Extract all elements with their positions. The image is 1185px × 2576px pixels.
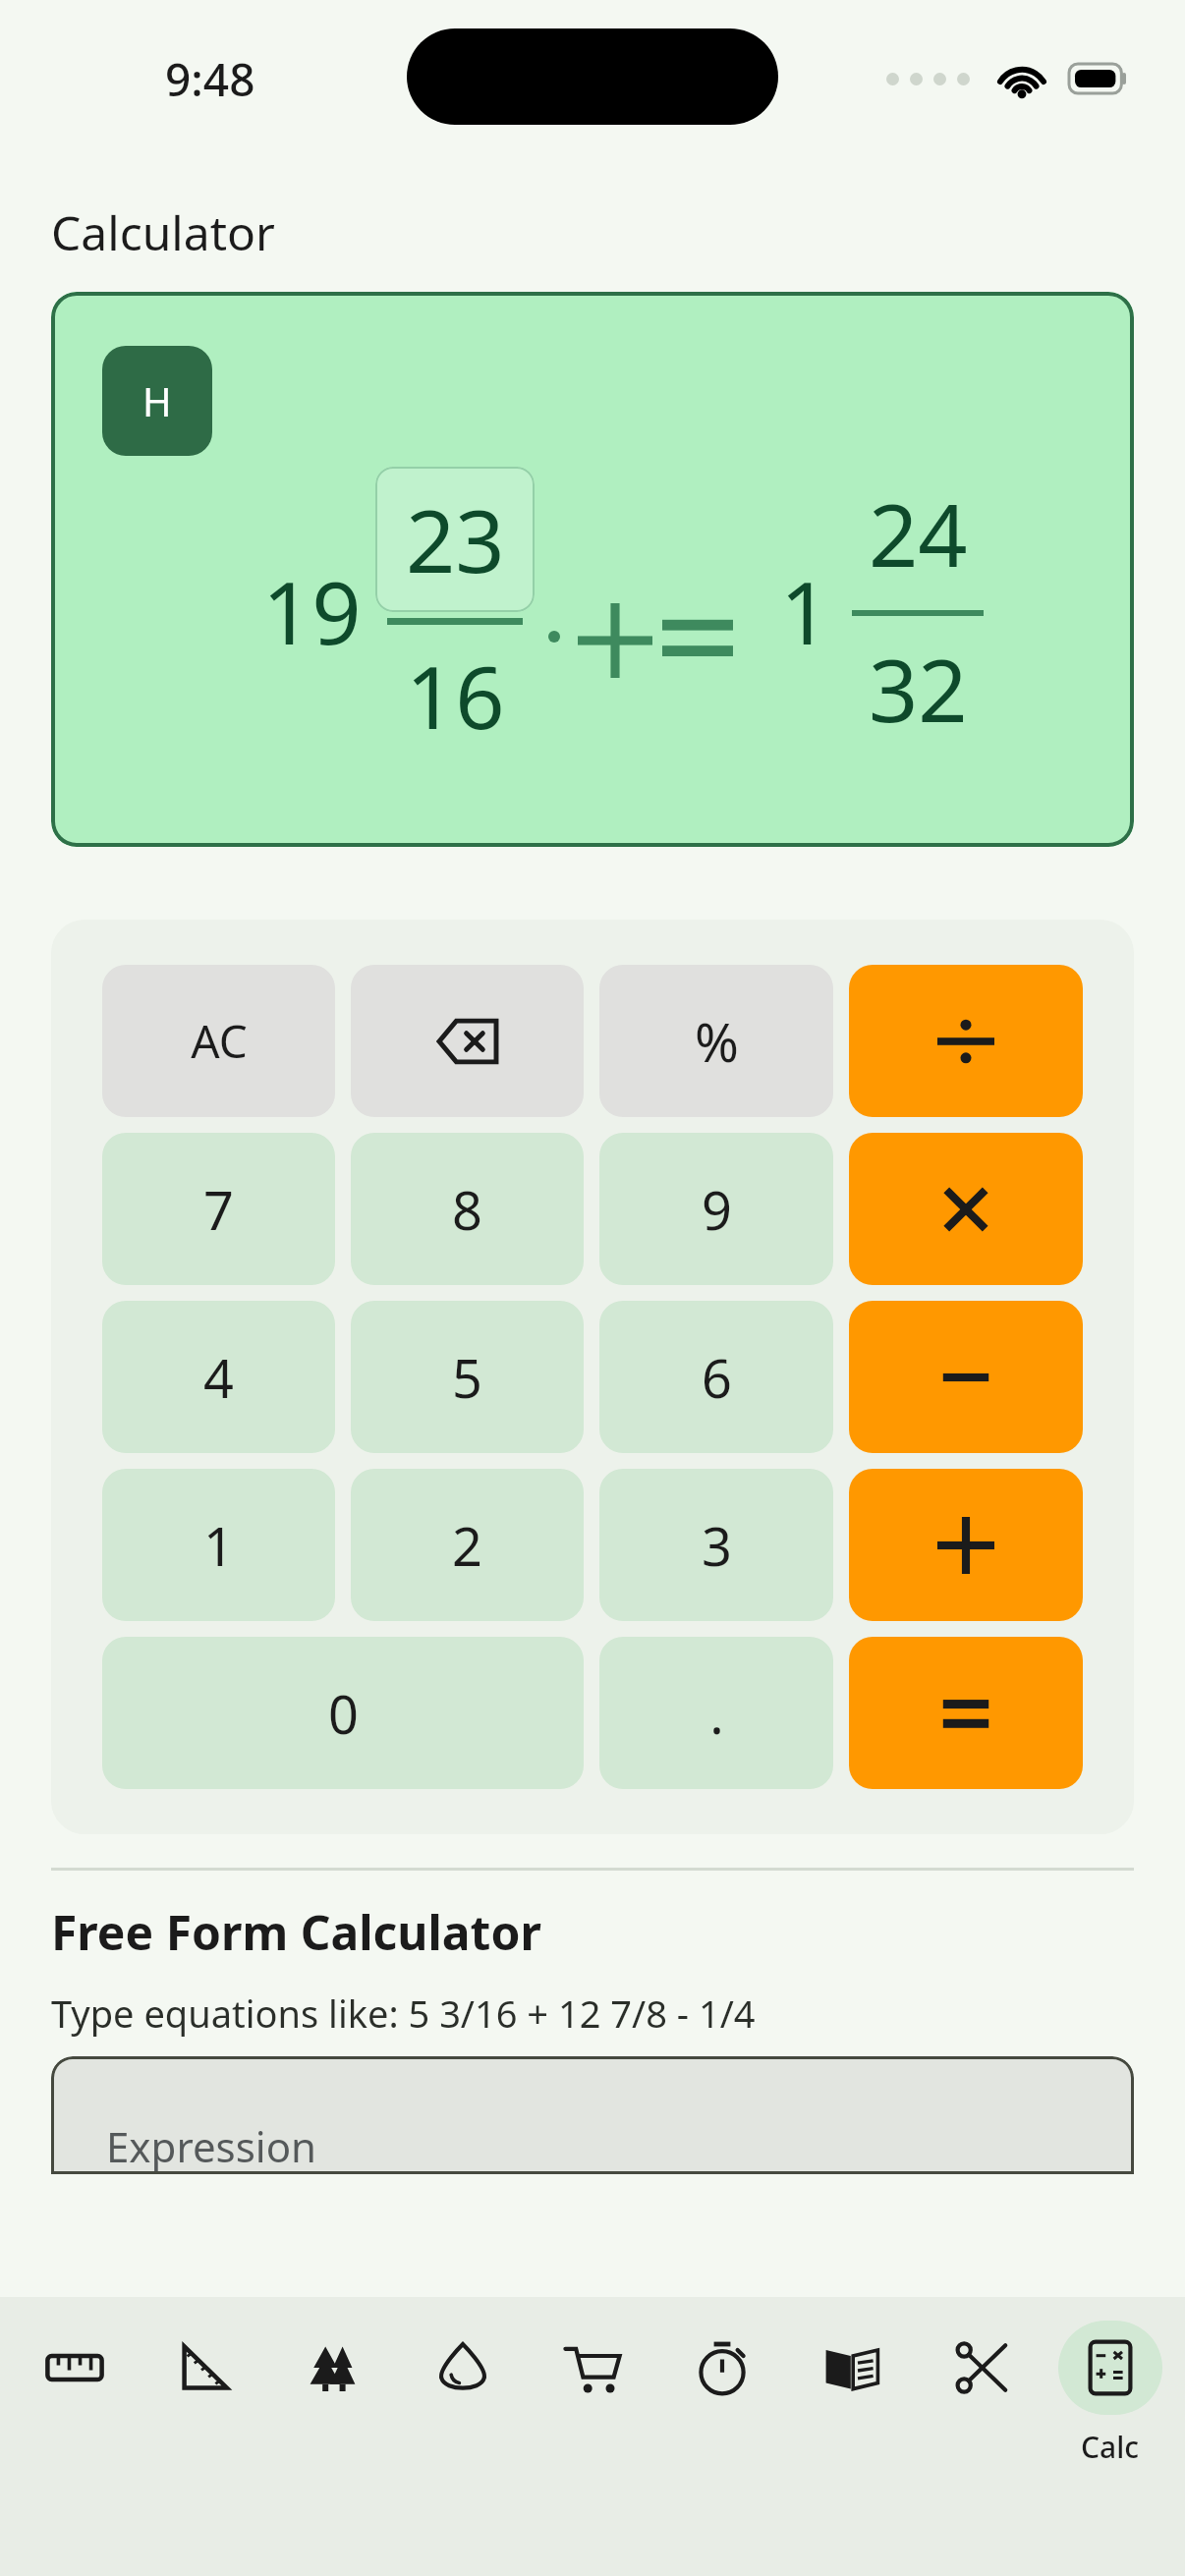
button[interactable]: 32 [869,630,968,748]
staticText: 6 [702,1341,732,1414]
button[interactable]: Cut List [926,2321,1036,2415]
button[interactable]: 6 [599,1301,833,1453]
button[interactable]: Minus [849,1301,1083,1453]
button[interactable]: Materials [537,2321,648,2415]
staticText: 3 [702,1509,732,1582]
button[interactable]: Guide [797,2321,907,2415]
staticText: % [695,1005,739,1078]
staticText: 9:48 [165,48,255,110]
button[interactable]: Divide [849,965,1083,1117]
button[interactable]: H [102,346,212,456]
button[interactable]: 3 [599,1469,833,1621]
staticText: Calc [1081,2427,1140,2467]
staticText: 8 [452,1173,482,1246]
button[interactable]: Timer [667,2321,777,2415]
button[interactable]: Equals [849,1637,1083,1789]
staticText: H [142,374,172,427]
staticText: 16 [406,637,505,755]
button[interactable]: 1 [102,1469,335,1621]
staticText: . [709,1677,724,1750]
button[interactable]: Angle [149,2321,259,2415]
button[interactable]: Concrete [408,2321,518,2415]
staticText: Calculator [51,200,275,264]
button[interactable]: . [599,1637,833,1789]
button[interactable]: % [599,965,833,1117]
button[interactable]: 4 [102,1301,335,1453]
button[interactable]: 0 [102,1637,584,1789]
staticText: 19 [262,552,362,670]
staticText: 1 [780,552,830,670]
button[interactable]: 8 [351,1133,584,1285]
button[interactable]: H [51,292,1134,847]
button[interactable]: Calc [1055,2321,1165,2467]
button[interactable]: 7 [102,1133,335,1285]
staticText: 9 [702,1173,732,1246]
staticText: 23 [406,480,505,598]
button[interactable]: 24 [869,475,968,592]
button[interactable]: 5 [351,1301,584,1453]
staticText: Type equations like: 5 3/16 + 12 7/8 - 1… [51,1988,756,2039]
staticText: Free Form Calculator [51,1900,541,1964]
button[interactable]: 23 [375,467,535,612]
button[interactable]: 2 [351,1469,584,1621]
button[interactable]: Ruler [20,2321,130,2415]
staticText: 2 [452,1509,482,1582]
button[interactable]: Expression [51,2056,1134,2174]
button[interactable]: Plus [849,1469,1083,1621]
staticText: AC [191,1010,248,1072]
staticText: 4 [203,1341,234,1414]
staticText: Expression [106,2118,317,2174]
staticText: 7 [203,1173,234,1246]
staticText: 0 [328,1677,359,1750]
button[interactable]: Lumber [278,2321,388,2415]
staticText: 5 [452,1341,482,1414]
button[interactable]: Backspace [351,965,584,1117]
button[interactable]: AC [102,965,335,1117]
button[interactable]: 9 [599,1133,833,1285]
staticText: 1 [203,1509,234,1582]
button[interactable]: Multiply [849,1133,1083,1285]
